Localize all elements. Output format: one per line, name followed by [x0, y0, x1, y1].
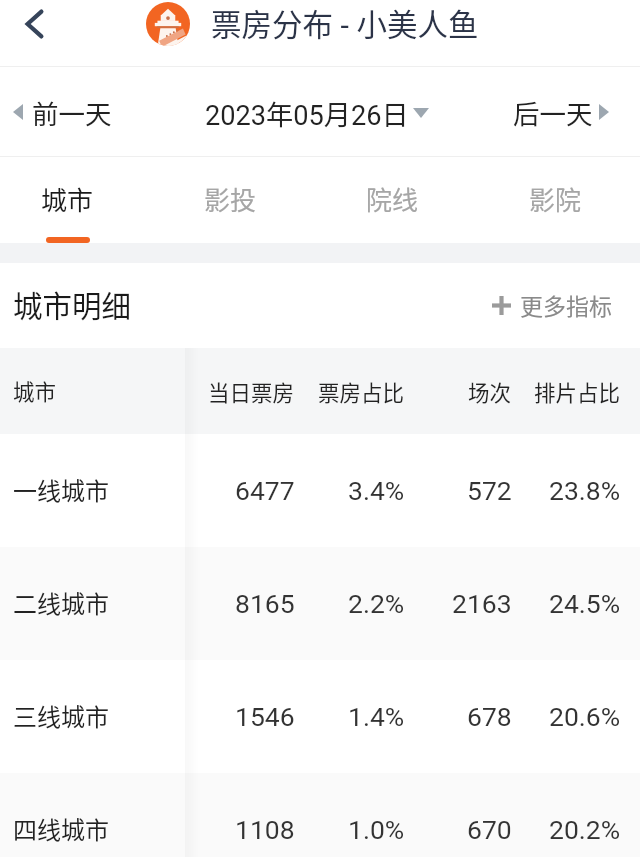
- staticText: 1546: [235, 701, 295, 732]
- staticText: 排片占比: [534, 376, 621, 407]
- button[interactable]: 影投: [163, 157, 298, 243]
- button[interactable]: 城市: [0, 157, 135, 243]
- staticText: 一线城市: [13, 472, 109, 507]
- staticText: 670: [467, 814, 512, 845]
- staticText: 场次: [468, 376, 512, 407]
- staticText: 23.8%: [549, 475, 621, 506]
- staticText: 票房分布 - 小美人鱼: [211, 1, 479, 45]
- staticText: 24.5%: [549, 588, 621, 619]
- button[interactable]: 后一天: [513, 93, 609, 131]
- staticText: 当日票房: [208, 376, 295, 407]
- button[interactable]: 一线城市: [0, 434, 640, 547]
- staticText: 2023年05月26日: [205, 93, 409, 132]
- staticText: 院线: [366, 180, 419, 218]
- staticText: 影院: [529, 180, 582, 218]
- staticText: 8165: [235, 588, 295, 619]
- staticText: 1.0%: [348, 814, 405, 845]
- staticText: 3.4%: [348, 475, 405, 506]
- staticText: 2163: [452, 588, 512, 619]
- staticText: 二线城市: [13, 585, 109, 620]
- staticText: 四线城市: [13, 811, 109, 846]
- staticText: 6477: [235, 475, 295, 506]
- staticText: 20.2%: [549, 814, 621, 845]
- button[interactable]: 院线: [325, 157, 460, 243]
- staticText: 城市: [41, 180, 94, 218]
- button[interactable]: 更多指标: [492, 288, 612, 323]
- staticText: 572: [467, 475, 512, 506]
- staticText: 城市明细: [13, 283, 132, 326]
- staticText: 后一天: [513, 93, 593, 131]
- button[interactable]: 前一天: [13, 93, 112, 131]
- staticText: 影投: [204, 180, 257, 218]
- button[interactable]: 2023年05月26日: [205, 93, 429, 132]
- staticText: 2.2%: [348, 588, 405, 619]
- button[interactable]: 四线城市: [0, 773, 640, 857]
- button[interactable]: 影院: [488, 157, 623, 243]
- button[interactable]: 三线城市: [0, 660, 640, 773]
- staticText: 三线城市: [13, 698, 109, 733]
- staticText: 前一天: [32, 93, 112, 131]
- button[interactable]: 二线城市: [0, 547, 640, 660]
- staticText: 20.6%: [549, 701, 621, 732]
- staticText: 678: [467, 701, 512, 732]
- staticText: 票房占比: [318, 376, 405, 407]
- staticText: 1108: [235, 814, 295, 845]
- staticText: 更多指标: [520, 288, 612, 321]
- staticText: 1.4%: [348, 701, 405, 732]
- button[interactable]: Back: [10, 0, 58, 48]
- staticText: 城市: [13, 375, 57, 406]
